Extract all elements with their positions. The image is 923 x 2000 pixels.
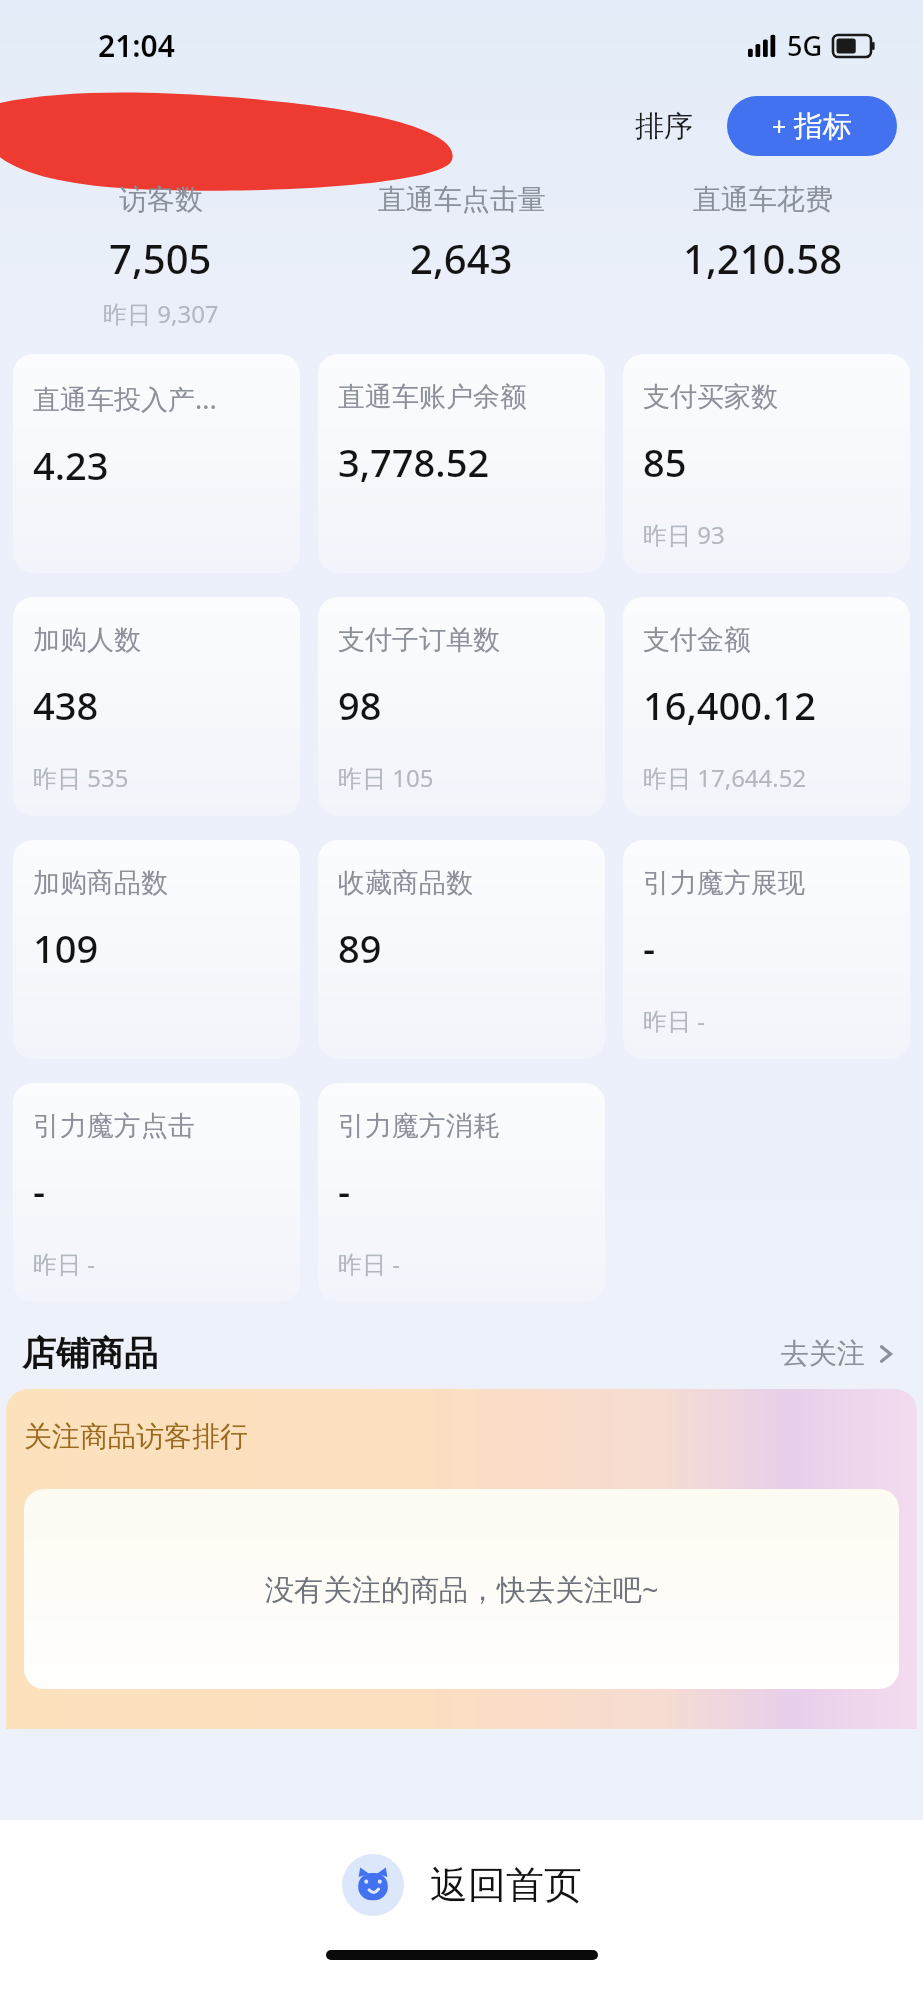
staticText: 3,778.52 (338, 436, 490, 488)
staticText: 直通车点击量 (378, 182, 546, 217)
button[interactable]: 引力魔方展现 (623, 840, 910, 1059)
button[interactable]: 引力魔方消耗 (318, 1083, 605, 1302)
staticText: 2,643 (410, 231, 513, 285)
staticText: 访客数 (119, 182, 203, 217)
button[interactable]: 收藏商品数 (318, 840, 605, 1059)
button[interactable]: 直通车花费 (612, 182, 913, 325)
button[interactable]: 直通车投入产... (13, 354, 300, 573)
staticText: 昨日 9,307 (103, 297, 219, 330)
staticText: 438 (33, 679, 99, 731)
staticText: 去关注 (781, 1336, 865, 1371)
button[interactable]: + (727, 96, 897, 156)
button[interactable]: 加购商品数 (13, 840, 300, 1059)
staticText: 没有关注的商品，快去关注吧~ (265, 1569, 659, 1609)
staticText: - (338, 1165, 351, 1217)
staticText: 89 (338, 922, 382, 974)
staticText: 关注商品访客排行 (24, 1419, 248, 1454)
staticText: 直通车花费 (693, 182, 833, 217)
staticText: 收藏商品数 (338, 866, 473, 900)
staticText: 昨日 - (33, 1247, 95, 1280)
staticText: 昨日 535 (33, 761, 129, 794)
staticText: 店铺商品 (22, 1332, 158, 1375)
button[interactable]: 支付买家数 (623, 354, 910, 573)
button[interactable]: 支付子订单数 (318, 597, 605, 816)
staticText: 加购商品数 (33, 866, 168, 900)
staticText: 昨日 - (338, 1247, 400, 1280)
staticText: 支付买家数 (643, 380, 778, 414)
staticText: 5G (787, 27, 823, 64)
button[interactable]: 引力魔方点击 (13, 1083, 300, 1302)
button[interactable]: 排序 (627, 102, 701, 151)
staticText: 引力魔方点击 (33, 1109, 195, 1143)
button[interactable]: 访客数 (10, 182, 311, 330)
button[interactable]: 支付金额 (623, 597, 910, 816)
staticText: 支付子订单数 (338, 623, 500, 657)
staticText: 排序 (635, 108, 693, 145)
staticText: 21:04 (98, 25, 175, 66)
button[interactable]: 直通车账户余额 (318, 354, 605, 573)
button[interactable]: 直通车点击量 (311, 182, 612, 325)
staticText: 昨日 105 (338, 761, 434, 794)
staticText: 109 (33, 922, 99, 974)
staticText: - (643, 922, 656, 974)
staticText: 直通车投入产... (33, 380, 217, 417)
staticText: - (33, 1165, 46, 1217)
button[interactable]: 去关注 (775, 1330, 901, 1377)
button[interactable]: 加购人数 (13, 597, 300, 816)
button[interactable]: 关注商品访客排行 (6, 1389, 917, 1729)
staticText: 16,400.12 (643, 679, 816, 731)
staticText: 直通车账户余额 (338, 380, 527, 414)
staticText: 昨日 93 (643, 518, 725, 551)
staticText: + (772, 109, 787, 143)
staticText: 98 (338, 679, 382, 731)
staticText: 1,210.58 (683, 231, 843, 285)
staticText: 加购人数 (33, 623, 141, 657)
staticText: 昨日 17,644.52 (643, 761, 807, 794)
staticText: 4.23 (33, 439, 109, 491)
staticText: 支付金额 (643, 623, 751, 657)
staticText: 引力魔方展现 (643, 866, 805, 900)
staticText: 85 (643, 436, 687, 488)
button[interactable]: 返回首页 (0, 1820, 923, 1950)
staticText: 昨日 - (643, 1004, 705, 1037)
staticText: 引力魔方消耗 (338, 1109, 500, 1143)
staticText: 返回首页 (430, 1861, 582, 1909)
staticText: 指标 (794, 108, 852, 145)
staticText: 7,505 (109, 231, 212, 285)
